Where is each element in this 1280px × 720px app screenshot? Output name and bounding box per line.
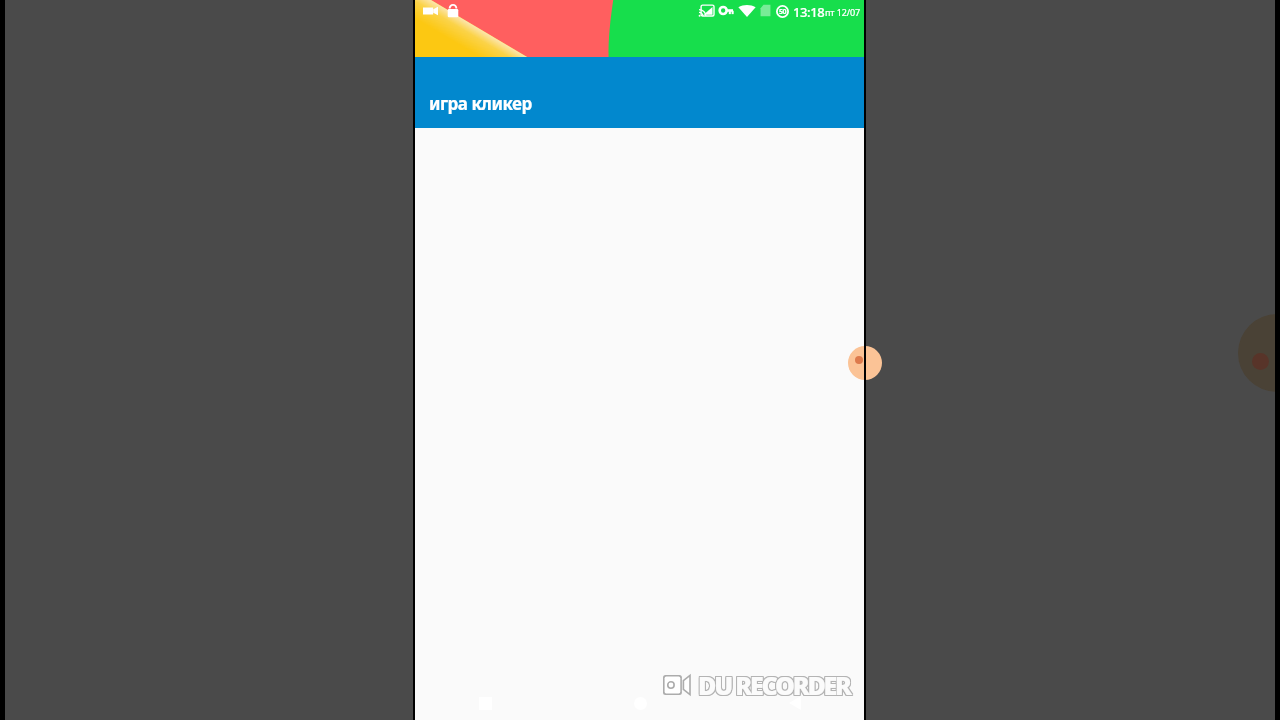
staticText: DU RECORDER [698,669,850,703]
staticText: DU RECORDER [697,667,849,701]
staticText: DU RECORDER [699,667,851,701]
button[interactable]: Back [773,681,817,720]
button[interactable]: Tap area [415,128,865,679]
staticText: игра кликер [429,92,532,115]
staticText: DU RECORDER [699,668,851,702]
button[interactable]: Recorder bubble [848,346,882,380]
staticText: DU RECORDER [699,669,851,703]
staticText: 13:18 [793,3,825,21]
staticText: пт 12/07 [825,6,861,18]
staticText: DU RECORDER [697,669,849,703]
staticText: DU RECORDER [697,668,849,702]
staticText: DU RECORDER [698,668,850,702]
staticText: 50 [779,7,787,17]
staticText: DU RECORDER [698,667,850,701]
